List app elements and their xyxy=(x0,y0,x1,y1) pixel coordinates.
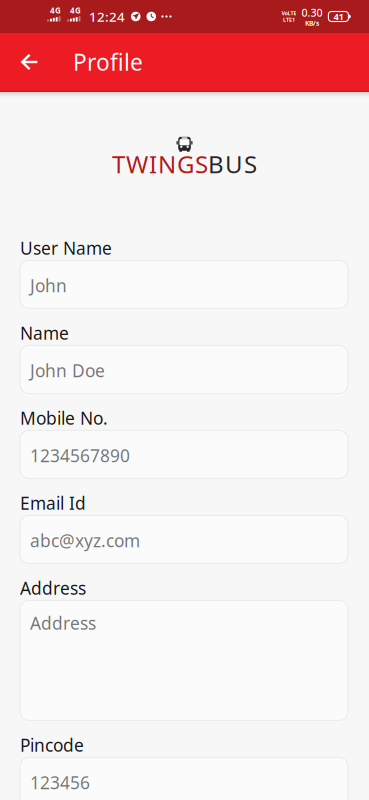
staticText: Email Id xyxy=(20,491,86,514)
staticText: John xyxy=(30,274,67,297)
staticText: BUS xyxy=(208,148,257,180)
button[interactable]: Back xyxy=(11,33,48,91)
staticText: abc@xyz.com xyxy=(30,529,140,552)
staticText: 0.30 xyxy=(301,5,322,20)
staticText: John Doe xyxy=(30,359,105,382)
staticText: User Name xyxy=(20,236,112,259)
staticText: Name xyxy=(20,321,69,344)
staticText: 4G xyxy=(50,5,61,16)
staticText: 4G xyxy=(70,5,81,16)
button[interactable]: 1234567890 xyxy=(20,430,348,478)
button[interactable]: 123456 xyxy=(20,757,348,800)
button[interactable]: abc@xyz.com xyxy=(20,515,348,563)
staticText: Address xyxy=(30,611,96,634)
staticText: Address xyxy=(20,576,86,599)
staticText: LTE1 xyxy=(283,16,295,23)
staticText: TWINGS xyxy=(112,148,208,180)
staticText: Pincode xyxy=(20,733,84,756)
button[interactable]: John xyxy=(20,260,348,308)
button[interactable]: Address xyxy=(20,600,348,720)
staticText: 123456 xyxy=(30,771,90,794)
staticText: 1234567890 xyxy=(30,444,130,467)
staticText: Mobile No. xyxy=(20,406,108,429)
staticText: 41 xyxy=(333,10,343,23)
staticText: KB/s xyxy=(305,19,319,28)
staticText: VoLTE xyxy=(281,10,296,17)
button[interactable]: John Doe xyxy=(20,345,348,393)
staticText: 12:24 xyxy=(89,8,125,25)
staticText: Profile xyxy=(73,47,143,77)
